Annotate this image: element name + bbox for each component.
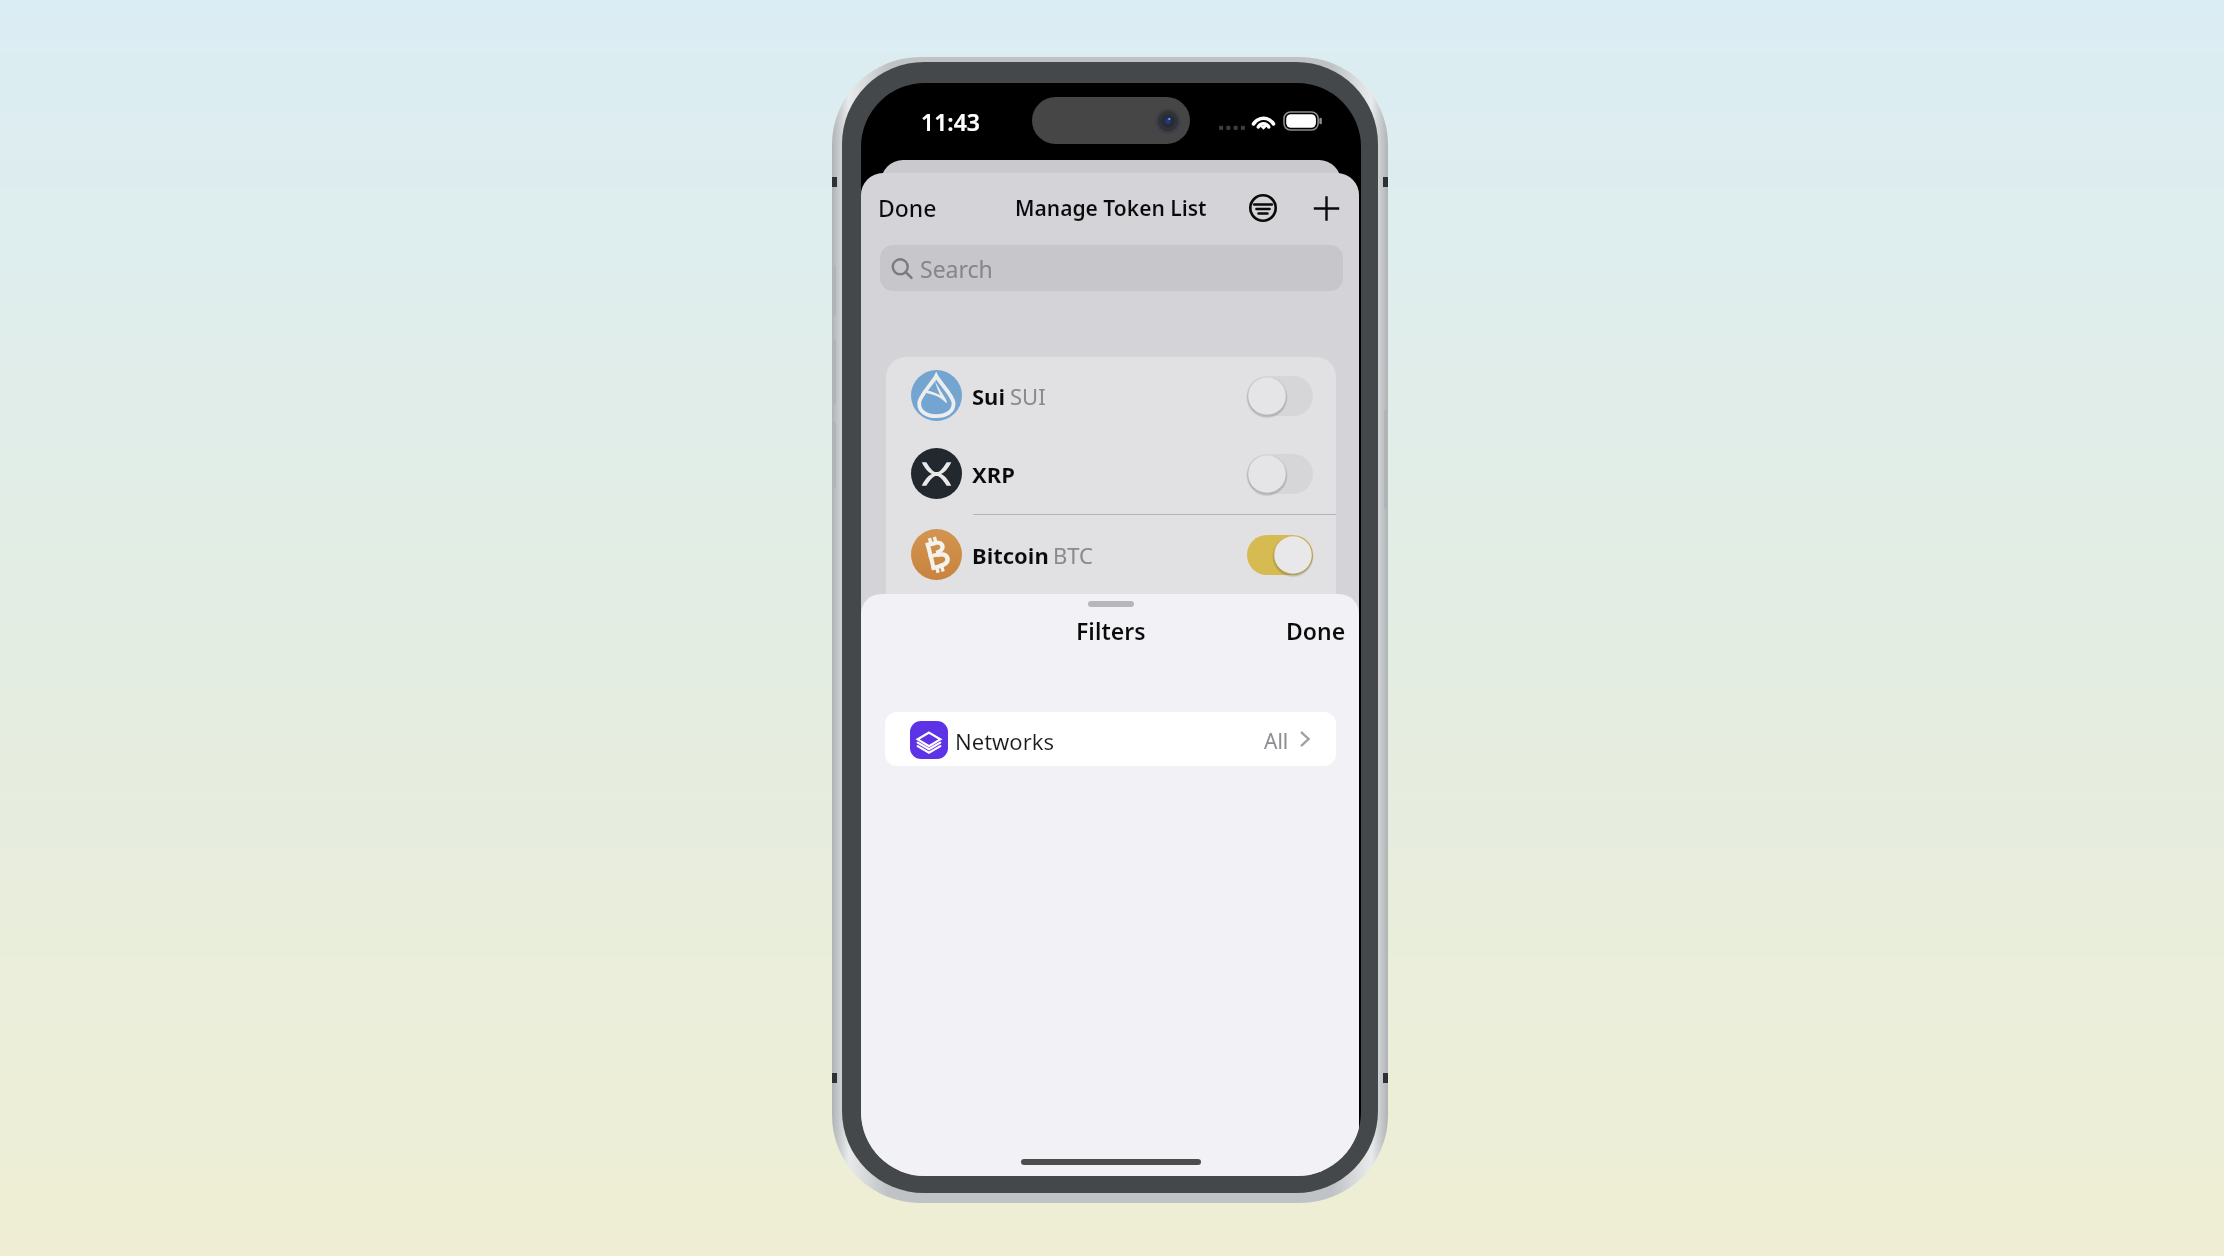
button[interactable]: Add token (1304, 186, 1348, 230)
button[interactable]: Disabled (1247, 376, 1313, 416)
staticText: BTC (1053, 540, 1093, 570)
button[interactable]: Disabled (1247, 454, 1313, 494)
button[interactable]: Filter (1241, 186, 1285, 230)
button[interactable]: Done (1280, 607, 1352, 654)
staticText: Sui (972, 381, 1006, 411)
staticText: Filters (1076, 615, 1146, 646)
staticText: Bitcoin (972, 540, 1049, 570)
button[interactable]: Enabled (1247, 535, 1313, 575)
staticText: 11:43 (921, 106, 980, 137)
button[interactable]: Networks (885, 712, 1336, 766)
button[interactable]: Sui (886, 357, 1336, 435)
button[interactable]: Search (880, 245, 1343, 291)
staticText: All (1264, 727, 1289, 756)
staticText: Search (920, 253, 993, 284)
button[interactable]: Done (872, 184, 943, 231)
staticText: XRP (972, 459, 1015, 489)
staticText: Manage Token List (1015, 194, 1207, 223)
button[interactable]: XRP (886, 435, 1336, 513)
staticText: Networks (955, 726, 1055, 756)
staticText: SUI (1010, 381, 1046, 411)
button[interactable]: Bitcoin (886, 516, 1336, 594)
